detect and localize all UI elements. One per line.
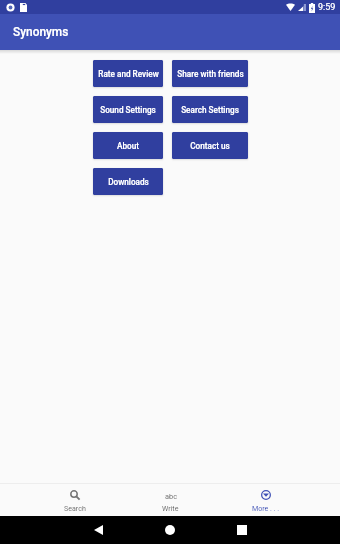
staticText: Write xyxy=(162,504,179,512)
staticText: Contact us xyxy=(190,141,230,151)
staticText: Share with friends xyxy=(177,69,244,79)
staticText: More . . . xyxy=(252,504,280,512)
button[interactable]: Search Settings xyxy=(172,96,248,123)
staticText: Search xyxy=(64,504,86,512)
button[interactable]: Sound Settings xyxy=(93,96,163,123)
staticText: 9:59 xyxy=(318,2,336,13)
staticText: Rate and Review xyxy=(98,69,159,79)
button[interactable]: Downloads xyxy=(93,168,163,195)
button[interactable]: Back xyxy=(85,517,111,543)
button[interactable]: Home xyxy=(157,517,183,543)
button[interactable]: Recents xyxy=(229,517,255,543)
staticText: Downloads xyxy=(108,177,149,187)
staticText: Synonyms xyxy=(13,25,69,39)
staticText: Sound Settings xyxy=(100,105,156,115)
button[interactable]: Search xyxy=(27,484,123,516)
button[interactable]: abc xyxy=(123,484,218,516)
button[interactable]: Share with friends xyxy=(172,60,248,87)
button[interactable]: Contact us xyxy=(172,132,248,159)
button[interactable]: About xyxy=(93,132,163,159)
staticText: abc xyxy=(165,492,178,501)
staticText: Search Settings xyxy=(181,105,239,115)
button[interactable]: More . . . xyxy=(218,484,313,516)
staticText: About xyxy=(117,141,139,151)
button[interactable]: Rate and Review xyxy=(93,60,163,87)
